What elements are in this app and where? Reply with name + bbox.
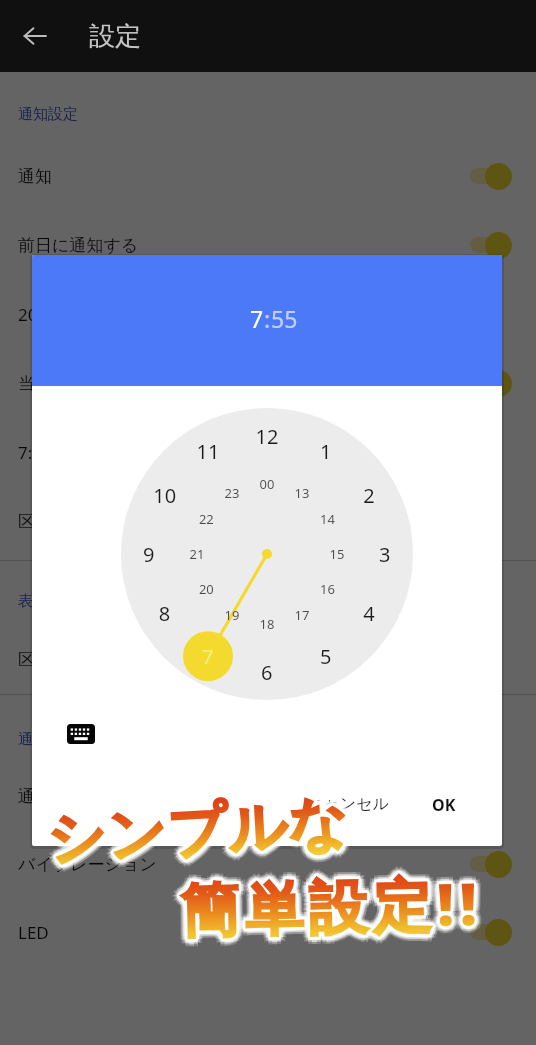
staticText: シンプルな bbox=[43, 793, 349, 883]
staticText: シンプルな bbox=[39, 790, 345, 880]
staticText: 簡単設定!! bbox=[178, 861, 482, 946]
staticText: 簡単設定!! bbox=[186, 867, 490, 952]
staticText: 簡単設定!! bbox=[181, 860, 485, 945]
button[interactable]: 20:00 bbox=[0, 280, 536, 348]
staticText: バイブレーション bbox=[18, 854, 157, 875]
staticText: 簡単設定!! bbox=[175, 863, 479, 948]
staticText: シンプルな bbox=[47, 784, 352, 874]
staticText: シンプルな bbox=[47, 788, 353, 878]
staticText: 簡単設定!! bbox=[184, 866, 488, 951]
staticText: シンプルな bbox=[47, 785, 352, 875]
staticText: 区切り線を表示 bbox=[18, 511, 138, 532]
staticText: シンプルな bbox=[43, 785, 348, 875]
button[interactable]: 区切り線を表示 bbox=[0, 487, 536, 555]
staticText: シンプルな bbox=[38, 787, 344, 876]
staticText: シンプルな bbox=[47, 779, 352, 869]
staticText: シンプルな bbox=[46, 784, 351, 874]
staticText: 通知設定 bbox=[18, 105, 78, 124]
staticText: シンプルな bbox=[45, 786, 351, 876]
staticText: 簡単設定!! bbox=[179, 861, 483, 946]
staticText: 簡単設定!! bbox=[182, 863, 486, 948]
staticText: シンプルな bbox=[46, 783, 351, 873]
staticText: シンプルな bbox=[41, 783, 346, 873]
staticText: シンプルな bbox=[44, 789, 350, 879]
staticText: シンプルな bbox=[43, 779, 348, 869]
staticText: 通知方法 bbox=[18, 730, 78, 749]
staticText: 簡単設定!! bbox=[176, 866, 480, 951]
staticText: 簡単設定!! bbox=[182, 864, 486, 949]
staticText: シンプルな bbox=[52, 786, 358, 875]
staticText: 20:00 bbox=[18, 303, 62, 326]
staticText: 簡単設定!! bbox=[186, 859, 490, 944]
staticText: 通知 bbox=[18, 166, 52, 187]
staticText: 55 bbox=[271, 303, 298, 334]
staticText: 簡単設定!! bbox=[178, 863, 482, 948]
button[interactable]: OK bbox=[420, 786, 468, 824]
button[interactable]: キャンセル bbox=[295, 786, 401, 822]
button[interactable]: バイブレーション bbox=[0, 830, 536, 898]
button[interactable]: Back bbox=[10, 11, 60, 61]
button[interactable]: 通知 bbox=[0, 142, 536, 210]
staticText: 簡単設定!! bbox=[184, 860, 488, 945]
staticText: シンプルな bbox=[51, 790, 357, 880]
button[interactable]: Switch to text input bbox=[60, 713, 102, 755]
staticText: 簡単設定!! bbox=[181, 866, 485, 951]
staticText: 7:00 bbox=[18, 441, 52, 464]
staticText: 簡単設定!! bbox=[185, 863, 489, 948]
staticText: シンプルな bbox=[51, 782, 356, 872]
staticText: シンプルな bbox=[43, 784, 348, 874]
staticText: シンプルな bbox=[44, 784, 349, 874]
staticText: シンプルな bbox=[43, 786, 349, 876]
staticText: 簡単設定!! bbox=[178, 865, 482, 950]
button[interactable]: 前日に通知する bbox=[0, 211, 536, 279]
staticText: 簡単設定!! bbox=[182, 870, 486, 955]
staticText: シンプルな bbox=[47, 786, 353, 876]
staticText: 区切り線を表示 bbox=[18, 649, 138, 670]
staticText: 簡単設定!! bbox=[180, 863, 484, 948]
staticText: 簡単設定!! bbox=[178, 858, 482, 943]
staticText: 表示設定 bbox=[18, 592, 78, 611]
staticText: シンプルな bbox=[42, 786, 348, 876]
staticText: 簡単設定!! bbox=[181, 861, 485, 946]
staticText: LED bbox=[18, 921, 49, 944]
staticText: 簡単設定!! bbox=[176, 860, 480, 945]
staticText: 簡単設定!! bbox=[182, 858, 486, 943]
staticText: シンプルな bbox=[47, 787, 353, 877]
button[interactable]: 当日に通知する bbox=[0, 349, 536, 417]
staticText: シンプルな bbox=[43, 781, 348, 871]
staticText: 簡単設定!! bbox=[179, 860, 483, 945]
staticText: シンプルな bbox=[44, 788, 350, 878]
staticText: シンプルな bbox=[47, 791, 353, 881]
staticText: 簡単設定!! bbox=[182, 861, 486, 946]
staticText: シンプルな bbox=[43, 787, 349, 877]
staticText: 簡単設定!! bbox=[187, 862, 491, 948]
staticText: 簡単設定!! bbox=[182, 862, 486, 947]
staticText: : bbox=[264, 303, 271, 334]
staticText: 簡単設定!! bbox=[178, 870, 482, 955]
staticText: シンプルな bbox=[50, 786, 356, 876]
button[interactable]: 通知音 bbox=[0, 762, 536, 830]
button[interactable]: LED bbox=[0, 898, 536, 966]
staticText: 7 bbox=[250, 303, 264, 334]
staticText: シンプルな bbox=[48, 786, 354, 876]
staticText: シンプルな bbox=[44, 783, 349, 873]
staticText: 設定 bbox=[89, 20, 141, 53]
button[interactable]: 区切り線を表示 bbox=[0, 625, 536, 693]
button[interactable]: 7:00 bbox=[0, 418, 536, 486]
staticText: 簡単設定!! bbox=[178, 868, 482, 953]
staticText: シンプルな bbox=[49, 789, 355, 879]
staticText: シンプルな bbox=[41, 789, 347, 879]
staticText: 当日に通知する bbox=[18, 373, 139, 394]
staticText: シンプルな bbox=[46, 789, 352, 879]
staticText: シンプルな bbox=[47, 793, 353, 883]
staticText: 簡単設定!! bbox=[179, 865, 483, 950]
staticText: 簡単設定!! bbox=[182, 865, 486, 950]
staticText: シンプルな bbox=[43, 791, 349, 881]
staticText: 簡単設定!! bbox=[182, 856, 486, 941]
staticText: 簡単設定!! bbox=[181, 865, 485, 950]
staticText: 簡単設定!! bbox=[173, 863, 477, 948]
staticText: 簡単設定!! bbox=[174, 859, 478, 944]
staticText: 簡単設定!! bbox=[179, 866, 483, 951]
staticText: シンプルな bbox=[49, 783, 354, 873]
staticText: シンプルな bbox=[43, 788, 349, 878]
